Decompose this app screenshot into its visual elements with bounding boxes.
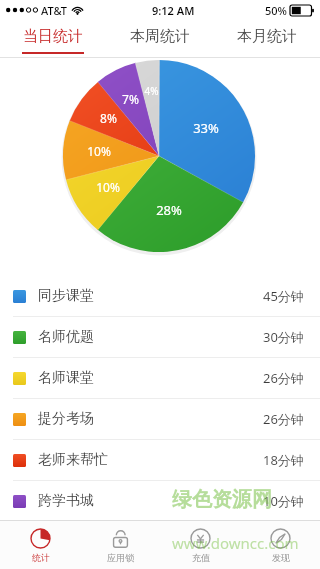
staticText: 名师优题 (38, 328, 94, 346)
staticText: 33% (193, 119, 219, 137)
button[interactable]: 发现 (240, 521, 320, 569)
staticText: 26分钟 (263, 410, 304, 428)
staticText: 30分钟 (263, 328, 304, 346)
staticText: 发现 (272, 552, 290, 563)
staticText: 跨学书城 (38, 492, 94, 510)
staticText: 当日统计 (23, 27, 83, 46)
staticText: 50% (265, 3, 287, 18)
staticText: 名师课堂 (38, 369, 94, 387)
staticText: AT&T (41, 3, 68, 18)
button[interactable]: 老师来帮忙 (0, 440, 320, 481)
staticText: 统计 (32, 552, 50, 563)
staticText: 10分钟 (263, 492, 304, 510)
staticText: 同步课堂 (38, 287, 94, 305)
button[interactable]: 本月统计 (213, 20, 320, 57)
staticText: 本月统计 (237, 27, 297, 46)
button[interactable]: 应用锁 (80, 521, 160, 569)
button[interactable]: 本周统计 (106, 20, 213, 57)
staticText: 18分钟 (263, 451, 304, 469)
staticText: 9:12 AM (152, 3, 195, 18)
staticText: 本周统计 (130, 27, 190, 46)
button[interactable]: 名师优题 (0, 317, 320, 358)
staticText: 10% (87, 143, 111, 159)
button[interactable]: 名师课堂 (0, 358, 320, 399)
staticText: 10% (96, 179, 120, 195)
staticText: 老师来帮忙 (38, 451, 108, 469)
button[interactable]: 当日统计 (0, 20, 106, 57)
staticText: 7% (122, 91, 139, 107)
staticText: 应用锁 (107, 552, 134, 563)
button[interactable]: 跨学书城 (0, 481, 320, 521)
staticText: 提分考场 (38, 410, 94, 428)
staticText: 26分钟 (263, 369, 304, 387)
staticText: 绿色资源网 (172, 487, 272, 512)
button[interactable]: 统计 (0, 521, 80, 569)
staticText: 45分钟 (263, 287, 304, 305)
button[interactable]: 充值 (160, 521, 240, 569)
staticText: www.downcc.com (172, 533, 299, 553)
staticText: 充值 (192, 552, 210, 563)
button[interactable]: 同步课堂 (0, 276, 320, 317)
staticText: 28% (156, 201, 182, 219)
button[interactable]: 提分考场 (0, 399, 320, 440)
staticText: 4% (144, 84, 159, 98)
staticText: 8% (100, 110, 117, 126)
